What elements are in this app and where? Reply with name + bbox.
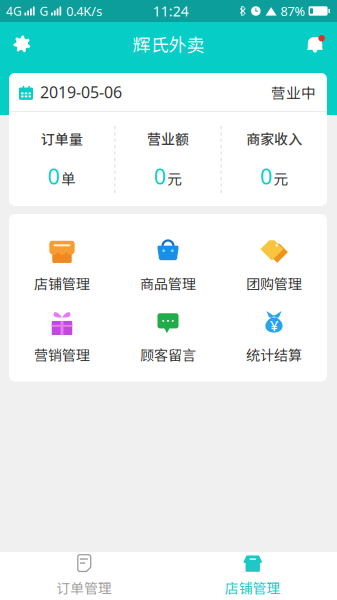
staticText: 商品管理 bbox=[140, 273, 196, 293]
staticText: 订单量 bbox=[41, 128, 83, 149]
staticText: 订单管理 bbox=[56, 578, 112, 597]
staticText: 单 bbox=[61, 167, 76, 189]
staticText: ¥ bbox=[270, 315, 278, 335]
button[interactable]: 2019-05-06 bbox=[9, 73, 327, 111]
button[interactable]: 设置 Settings bbox=[1, 22, 43, 66]
staticText: 营业中 bbox=[271, 81, 316, 103]
button[interactable]: ¥ bbox=[221, 308, 327, 365]
staticText: 辉氏外卖 bbox=[132, 31, 204, 57]
staticText: G bbox=[40, 3, 49, 19]
button[interactable]: 团购管理 bbox=[221, 237, 327, 293]
staticText: 2019-05-06 bbox=[40, 81, 122, 103]
staticText: 营业额 bbox=[147, 128, 189, 149]
staticText: 统计结算 bbox=[246, 344, 302, 365]
button[interactable]: 商品管理 bbox=[115, 237, 221, 293]
staticText: 店铺管理 bbox=[34, 273, 90, 293]
staticText: 营销管理 bbox=[34, 344, 90, 365]
staticText: 87% bbox=[281, 2, 306, 20]
staticText: 0 bbox=[47, 162, 59, 191]
button[interactable]: 顾客留言 bbox=[115, 308, 221, 365]
staticText: 0.4K/s bbox=[66, 2, 102, 20]
staticText: 商家收入 bbox=[246, 128, 302, 149]
button[interactable]: 店铺管理 bbox=[9, 237, 115, 293]
staticText: 店铺管理 bbox=[225, 578, 281, 597]
staticText: 元 bbox=[167, 167, 182, 189]
button[interactable]: 营销管理 bbox=[9, 308, 115, 365]
staticText: 团购管理 bbox=[246, 273, 302, 293]
staticText: 元 bbox=[274, 167, 289, 189]
button[interactable]: 订单管理 bbox=[0, 549, 168, 600]
staticText: 0 bbox=[260, 162, 272, 191]
staticText: 顾客留言 bbox=[140, 344, 196, 365]
staticText: 11:24 bbox=[153, 1, 189, 21]
staticText: 4G bbox=[6, 3, 22, 19]
button[interactable]: 消息 Notifications bbox=[294, 22, 336, 66]
staticText: 0 bbox=[154, 162, 166, 191]
button[interactable]: 店铺管理 bbox=[168, 549, 337, 600]
